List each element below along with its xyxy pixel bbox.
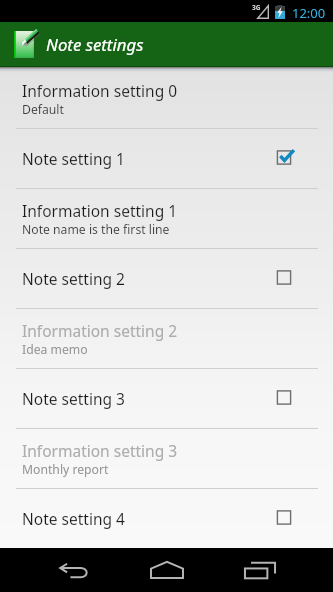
button[interactable]: Note setting 4	[0, 489, 333, 548]
button[interactable]: Note setting 1	[0, 129, 333, 188]
staticText: Information setting 0	[22, 80, 178, 101]
staticText: Default	[22, 101, 64, 118]
staticText: 3G	[252, 3, 261, 12]
staticText: Idea memo	[22, 341, 88, 358]
button[interactable]: Note setting 2	[0, 249, 333, 308]
staticText: Information setting 2	[22, 320, 178, 341]
staticText: 12:00	[292, 4, 326, 22]
staticText: Note setting 2	[22, 268, 125, 289]
button[interactable]: Note setting 3	[0, 369, 333, 428]
button[interactable]: Toggle setting	[269, 384, 299, 414]
staticText: Note setting 1	[22, 148, 125, 169]
button[interactable]: Information setting 1	[0, 189, 333, 248]
button[interactable]: Information setting 3	[0, 429, 333, 488]
staticText: Information setting 1	[22, 200, 178, 221]
button[interactable]: Back	[44, 548, 104, 592]
staticText: Information setting 3	[22, 440, 178, 461]
button[interactable]: Home	[137, 548, 197, 592]
button[interactable]: Toggle setting	[269, 504, 299, 534]
button[interactable]: Toggle setting	[269, 264, 299, 294]
staticText: Note setting 3	[22, 388, 125, 409]
staticText: Note settings	[46, 33, 144, 56]
button[interactable]: Information setting 2	[0, 309, 333, 368]
button[interactable]: Recent apps	[230, 548, 290, 592]
staticText: Note setting 4	[22, 508, 125, 529]
staticText: Monthly report	[22, 461, 109, 478]
staticText: Note name is the first line	[22, 221, 170, 238]
button[interactable]: Toggle setting	[269, 144, 299, 174]
button[interactable]: Information setting 0	[0, 69, 333, 128]
